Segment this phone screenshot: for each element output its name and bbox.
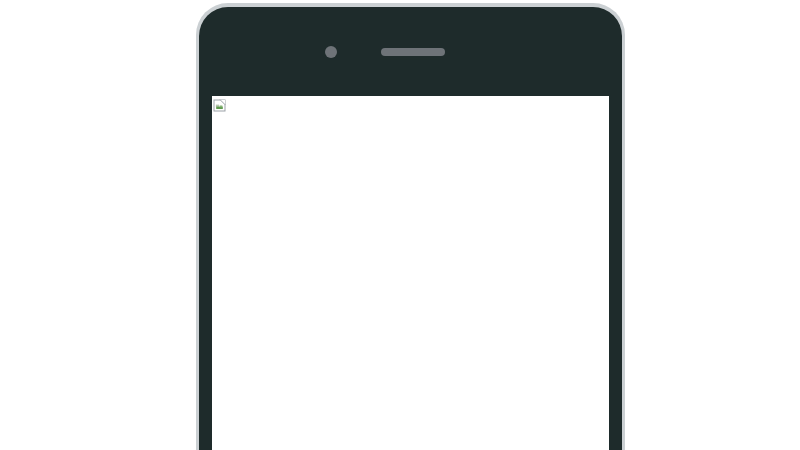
button[interactable]: Phone mockup — [196, 3, 625, 450]
